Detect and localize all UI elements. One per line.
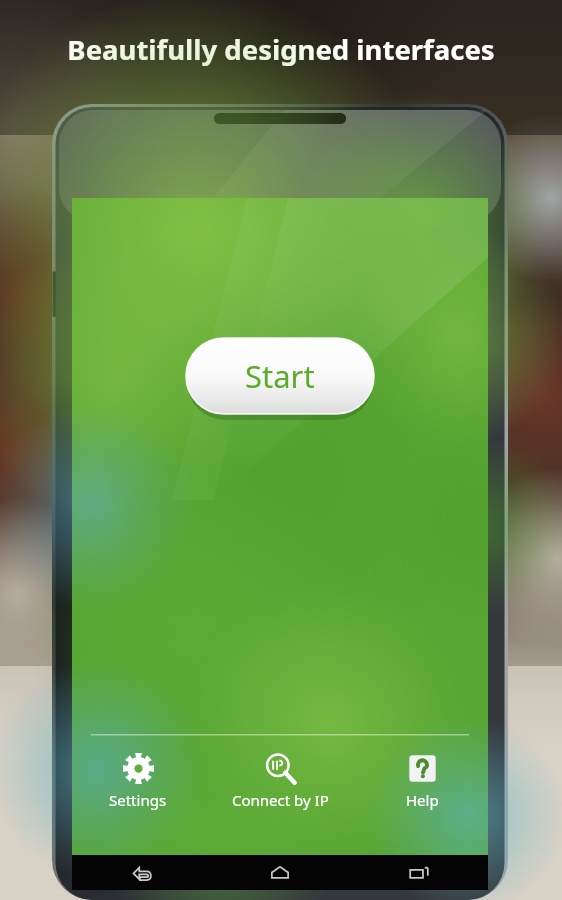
button[interactable]: Connect by IP <box>204 745 356 810</box>
button[interactable]: Help <box>356 745 488 810</box>
staticText: Connect by IP <box>232 790 329 810</box>
button[interactable]: Back <box>72 855 210 890</box>
staticText: Settings <box>109 790 167 810</box>
staticText: Beautifully designed interfaces <box>67 31 495 68</box>
button[interactable]: Settings <box>72 745 204 810</box>
button[interactable]: Start <box>185 338 375 418</box>
button[interactable]: Recent apps <box>349 855 488 890</box>
button[interactable]: Home <box>210 855 349 890</box>
staticText: Start <box>245 355 315 397</box>
staticText: Help <box>406 790 439 810</box>
